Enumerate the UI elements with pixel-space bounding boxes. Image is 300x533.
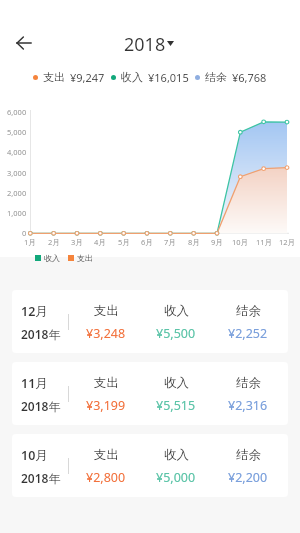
button[interactable]: 10月 bbox=[12, 434, 288, 497]
staticText: 2018 bbox=[124, 32, 166, 57]
staticText: ¥3,248 bbox=[86, 325, 126, 342]
staticText: 6月 bbox=[141, 237, 153, 247]
staticText: 支出 bbox=[43, 70, 65, 84]
staticText: ¥9,247 bbox=[70, 70, 105, 84]
staticText: 结余 bbox=[236, 303, 261, 319]
staticText: 2,000 bbox=[7, 188, 27, 198]
staticText: 4,000 bbox=[7, 147, 27, 157]
staticText: 结余 bbox=[236, 375, 261, 391]
staticText: ¥5,500 bbox=[156, 325, 196, 342]
staticText: ¥6,768 bbox=[232, 70, 267, 84]
staticText: 12月 bbox=[21, 303, 48, 320]
staticText: 收入 bbox=[44, 253, 60, 263]
staticText: 结余 bbox=[205, 70, 227, 84]
staticText: 支出 bbox=[94, 303, 119, 319]
staticText: 11月 bbox=[21, 375, 48, 392]
staticText: 收入 bbox=[121, 70, 143, 84]
staticText: ¥2,800 bbox=[86, 469, 126, 486]
staticText: 支出 bbox=[94, 375, 119, 391]
staticText: 1,000 bbox=[7, 208, 27, 218]
staticText: 5月 bbox=[118, 237, 130, 247]
staticText: 收入 bbox=[164, 447, 189, 463]
staticText: ¥16,015 bbox=[148, 70, 189, 84]
staticText: 6,000 bbox=[7, 107, 27, 117]
staticText: 支出 bbox=[94, 447, 119, 463]
staticText: 结余 bbox=[236, 447, 261, 463]
staticText: 4月 bbox=[94, 237, 106, 247]
staticText: 5,000 bbox=[7, 127, 27, 137]
staticText: ¥2,252 bbox=[228, 325, 268, 342]
staticText: 0 bbox=[22, 228, 27, 238]
staticText: 1月 bbox=[24, 237, 36, 247]
staticText: 支出 bbox=[77, 253, 93, 263]
staticText: 2018年 bbox=[21, 470, 61, 486]
button[interactable]: Back bbox=[8, 27, 39, 58]
staticText: 12月 bbox=[279, 237, 296, 247]
staticText: 10月 bbox=[21, 447, 48, 464]
staticText: ¥3,199 bbox=[86, 397, 126, 414]
staticText: 2018年 bbox=[21, 398, 61, 414]
staticText: ¥5,000 bbox=[156, 469, 196, 486]
button[interactable]: 12月 bbox=[12, 290, 288, 353]
staticText: ¥5,515 bbox=[156, 397, 196, 414]
staticText: 收入 bbox=[164, 303, 189, 319]
staticText: 2月 bbox=[48, 237, 60, 247]
button[interactable]: 11月 bbox=[12, 362, 288, 425]
staticText: 3月 bbox=[71, 237, 83, 247]
staticText: 2018年 bbox=[21, 326, 61, 342]
staticText: 3,000 bbox=[7, 168, 27, 178]
staticText: 10月 bbox=[232, 237, 249, 247]
button[interactable]: 2018 bbox=[124, 32, 176, 57]
staticText: 收入 bbox=[164, 375, 189, 391]
staticText: ¥2,200 bbox=[228, 469, 268, 486]
staticText: 9月 bbox=[211, 237, 223, 247]
staticText: ¥2,316 bbox=[228, 397, 268, 414]
staticText: 7月 bbox=[164, 237, 176, 247]
staticText: 11月 bbox=[256, 237, 273, 247]
staticText: 8月 bbox=[188, 237, 200, 247]
